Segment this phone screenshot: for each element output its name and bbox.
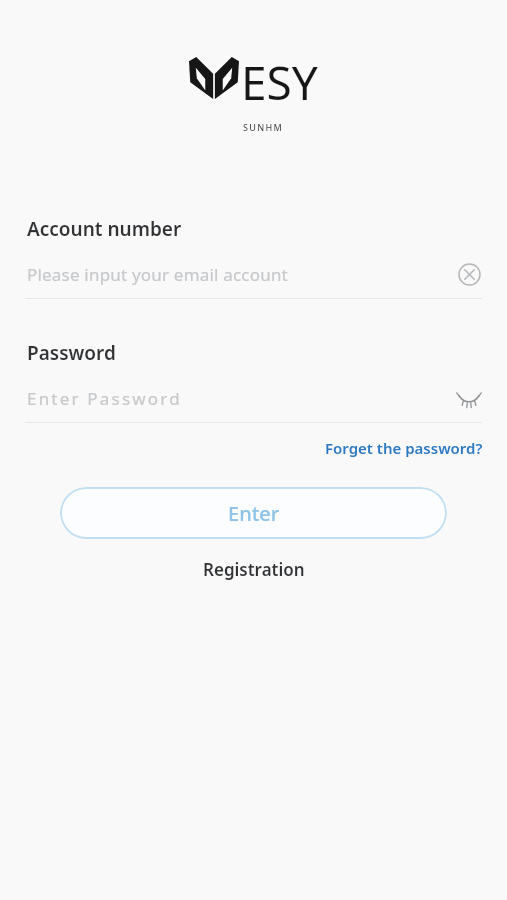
button[interactable]: Forget the password?: [315, 435, 507, 461]
staticText: Enter: [228, 500, 280, 527]
staticText: ESY: [241, 51, 318, 114]
button[interactable]: Registration: [189, 553, 319, 586]
staticText: SUNHM: [243, 121, 284, 133]
button[interactable]: Enter: [60, 487, 447, 539]
button[interactable]: Clear account number: [453, 259, 485, 289]
staticText: Registration: [203, 558, 305, 581]
staticText: Enter Password: [27, 387, 453, 410]
button[interactable]: Show password: [453, 383, 485, 413]
staticText: Account number: [27, 216, 182, 242]
staticText: Forget the password?: [325, 438, 483, 458]
staticText: Password: [27, 340, 116, 366]
staticText: Please input your email account: [27, 263, 453, 286]
